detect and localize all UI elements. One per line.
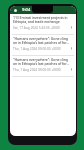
- button[interactable]: "Humans everywhere": Gone cling on in Et…: [10, 35, 76, 56]
- button[interactable]: Share article: [69, 25, 74, 30]
- staticText: 9:04: [22, 7, 31, 13]
- staticText: "Humans everywhere": Gone cling on in Et…: [13, 36, 70, 45]
- button[interactable]: 113 Emirati investment projects in Ethio…: [10, 14, 76, 35]
- button[interactable]: "Humans everywhere": Gone cling on in Et…: [10, 56, 76, 77]
- staticText: 113 Emirati investment projects in Ethio…: [13, 15, 70, 24]
- staticText: Sat, 17 Aug 2024 5:43:56 +0000: [13, 26, 69, 30]
- button[interactable]: Share article: [69, 46, 74, 51]
- button[interactable]: Share article: [69, 67, 74, 72]
- staticText: "Humans everywhere": Gone cling on in Et…: [13, 57, 70, 66]
- staticText: Thu, 1 Aug 2024 09:00:00 +0000: [13, 68, 69, 72]
- staticText: Thu, 1 Aug 2024 09:00:00 +0000: [13, 47, 69, 51]
